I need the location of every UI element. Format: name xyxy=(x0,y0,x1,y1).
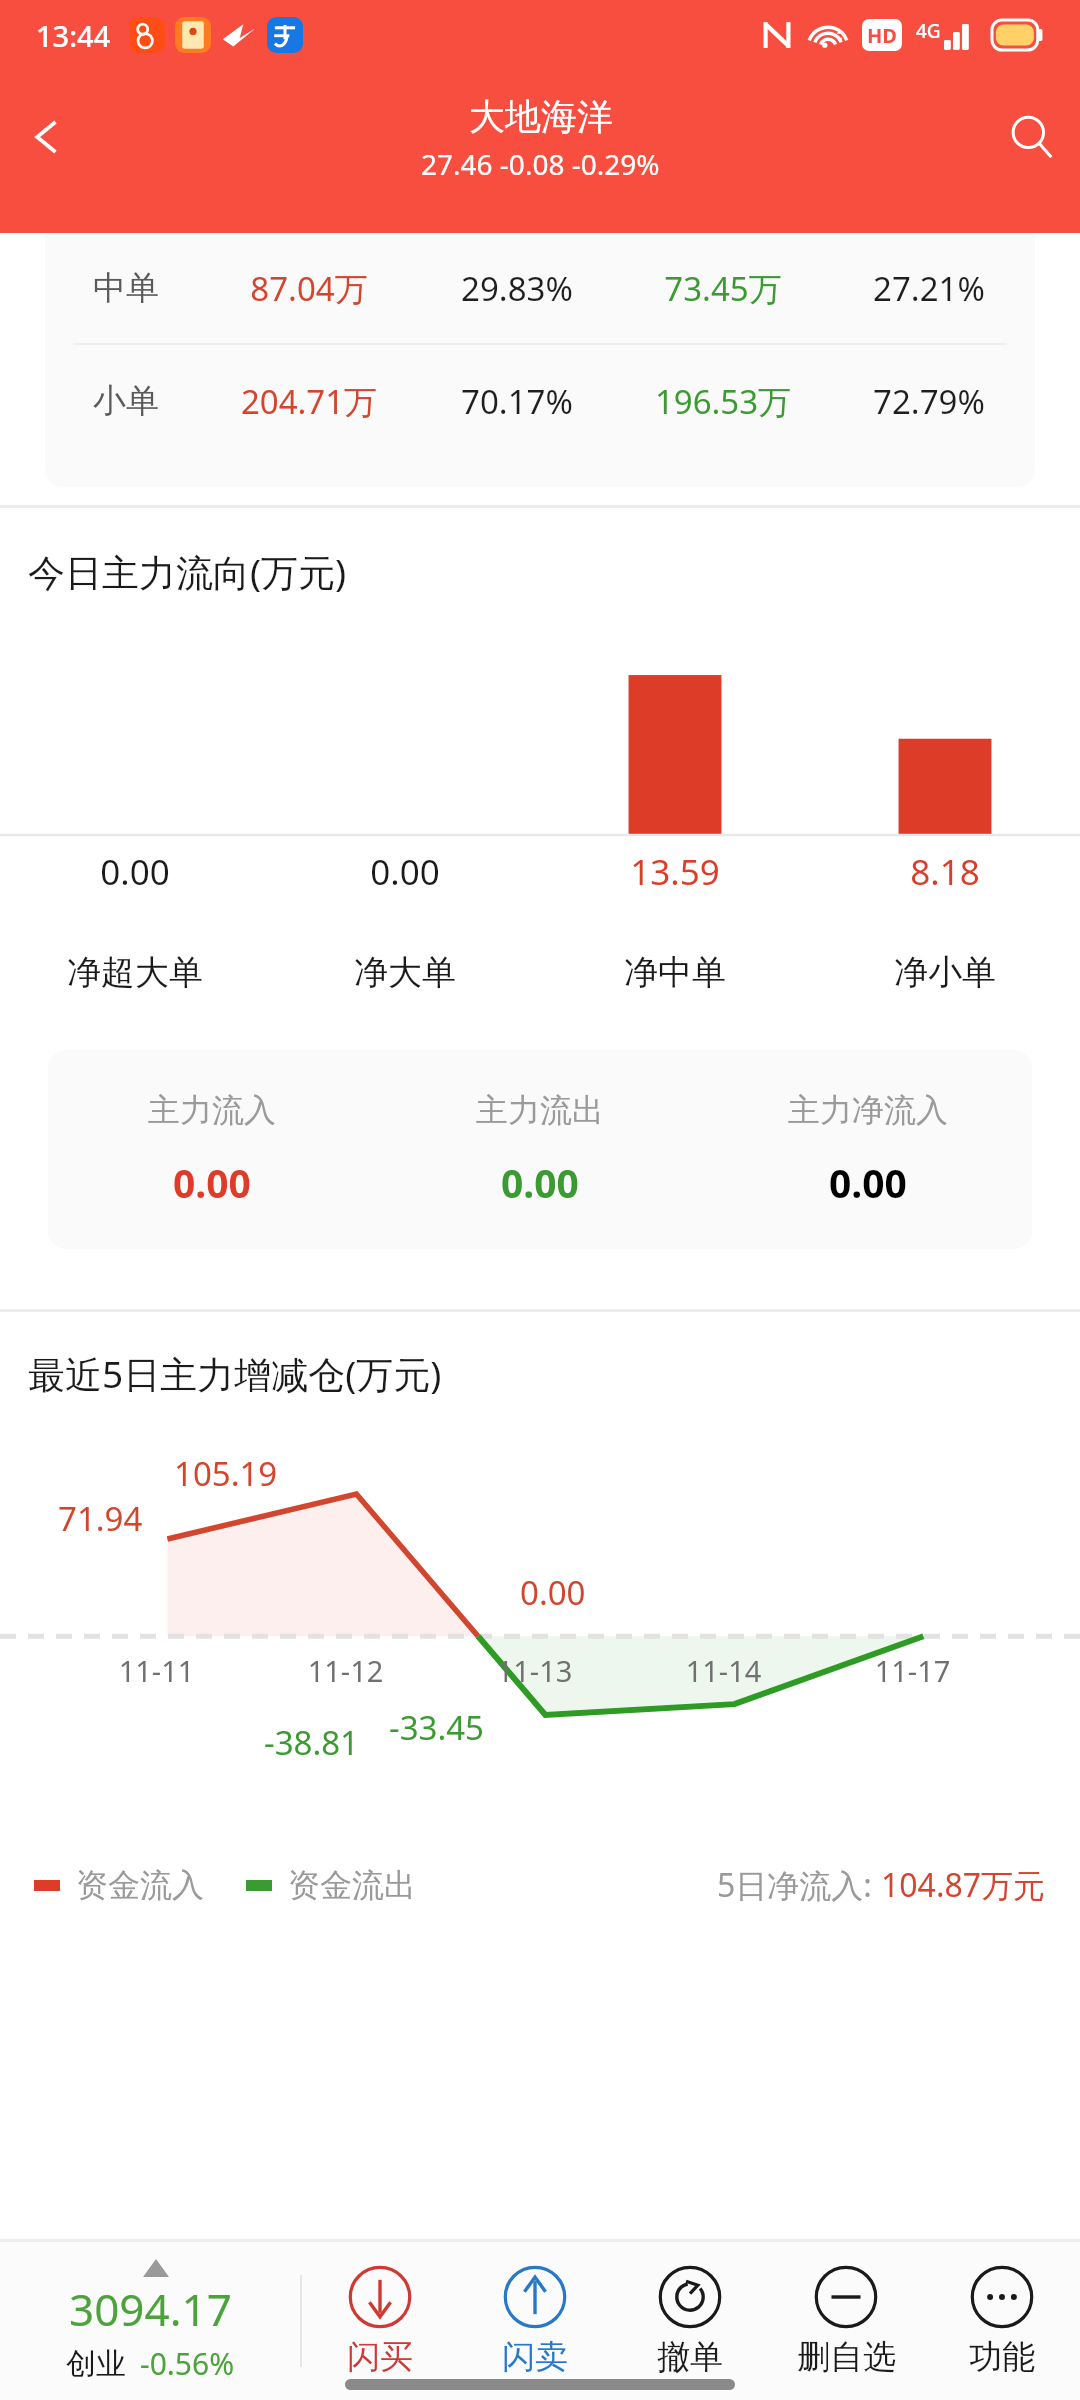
staticText: 8.18 xyxy=(810,848,1080,896)
staticText: -38.81 xyxy=(264,1720,359,1765)
staticText: 196.53万 xyxy=(617,379,829,424)
staticText: 主力净流入 xyxy=(788,1090,948,1130)
staticText: 0.00 xyxy=(173,1156,251,1209)
staticText: 13.59 xyxy=(540,848,810,896)
staticText: 71.94 xyxy=(58,1496,143,1541)
staticText: 撤单 xyxy=(657,2336,723,2378)
staticText: HD xyxy=(867,22,897,49)
staticText: 0.00 xyxy=(0,848,270,896)
staticText: 70.17% xyxy=(417,379,617,424)
staticText: 0.00 xyxy=(270,848,540,896)
staticText: 5日净流入: xyxy=(717,1863,881,1907)
button[interactable]: Back xyxy=(0,89,96,185)
staticText: 小单 xyxy=(51,380,201,422)
staticText: 删自选 xyxy=(797,2336,896,2378)
staticText: 11-11 xyxy=(62,1651,251,1690)
staticText: 11-14 xyxy=(629,1651,818,1690)
staticText: 87.04万 xyxy=(201,266,417,311)
staticText: 204.71万 xyxy=(201,379,417,424)
staticText: 13:44 xyxy=(36,16,111,55)
staticText: 11-17 xyxy=(818,1651,1007,1690)
staticText: 闪买 xyxy=(347,2336,413,2378)
staticText: 最近5日主力增减仓(万元) xyxy=(28,1348,442,1399)
staticText: 今日主力流向(万元) xyxy=(28,546,347,597)
button[interactable]: 主力流入 xyxy=(48,1090,1032,1209)
button[interactable]: 小单 xyxy=(51,345,1029,457)
staticText: 72.79% xyxy=(829,379,1029,424)
staticText: 0.00 xyxy=(501,1156,579,1209)
staticText: 资金流入 xyxy=(76,1865,204,1905)
staticText: 11-12 xyxy=(251,1651,440,1690)
staticText: 4G xyxy=(916,18,941,44)
button[interactable]: 闪买 xyxy=(302,2242,457,2400)
button[interactable]: 3094.17 xyxy=(0,2259,300,2384)
button[interactable]: 闪卖 xyxy=(457,2242,612,2400)
staticText: 3094.17 xyxy=(69,2279,232,2339)
staticText: 资金流出 xyxy=(288,1865,416,1905)
button[interactable]: Search xyxy=(984,89,1080,185)
staticText: 净超大单 xyxy=(0,951,270,994)
staticText: 27.21% xyxy=(829,266,1029,311)
staticText: 主力流入 xyxy=(148,1090,276,1130)
button[interactable]: 大地海洋 xyxy=(421,94,660,183)
staticText: 净中单 xyxy=(540,951,810,994)
staticText: 0.00 xyxy=(829,1156,907,1209)
staticText: 73.45万 xyxy=(617,266,829,311)
staticText: 功能 xyxy=(969,2336,1035,2378)
staticText: 29.83% xyxy=(417,266,617,311)
staticText: 主力流出 xyxy=(476,1090,604,1130)
staticText: 中单 xyxy=(51,267,201,309)
staticText: 净大单 xyxy=(270,951,540,994)
staticText: 净小单 xyxy=(810,951,1080,994)
staticText: 闪卖 xyxy=(502,2336,568,2378)
staticText: 105.19 xyxy=(174,1451,278,1496)
button[interactable]: 功能 xyxy=(924,2242,1080,2400)
button[interactable]: 中单 xyxy=(51,233,1029,343)
button[interactable]: 撤单 xyxy=(612,2242,768,2400)
button[interactable]: 删自选 xyxy=(768,2242,924,2400)
staticText: 11-13 xyxy=(440,1651,629,1690)
staticText: 0.00 xyxy=(520,1570,586,1615)
staticText: 大地海洋 xyxy=(469,94,613,139)
staticText: 104.87万元 xyxy=(881,1863,1046,1907)
staticText: 27.46 -0.08 -0.29% xyxy=(421,145,660,183)
staticText: -33.45 xyxy=(389,1705,484,1750)
staticText: -0.56% xyxy=(140,2343,235,2384)
staticText: 创业 xyxy=(66,2345,126,2383)
